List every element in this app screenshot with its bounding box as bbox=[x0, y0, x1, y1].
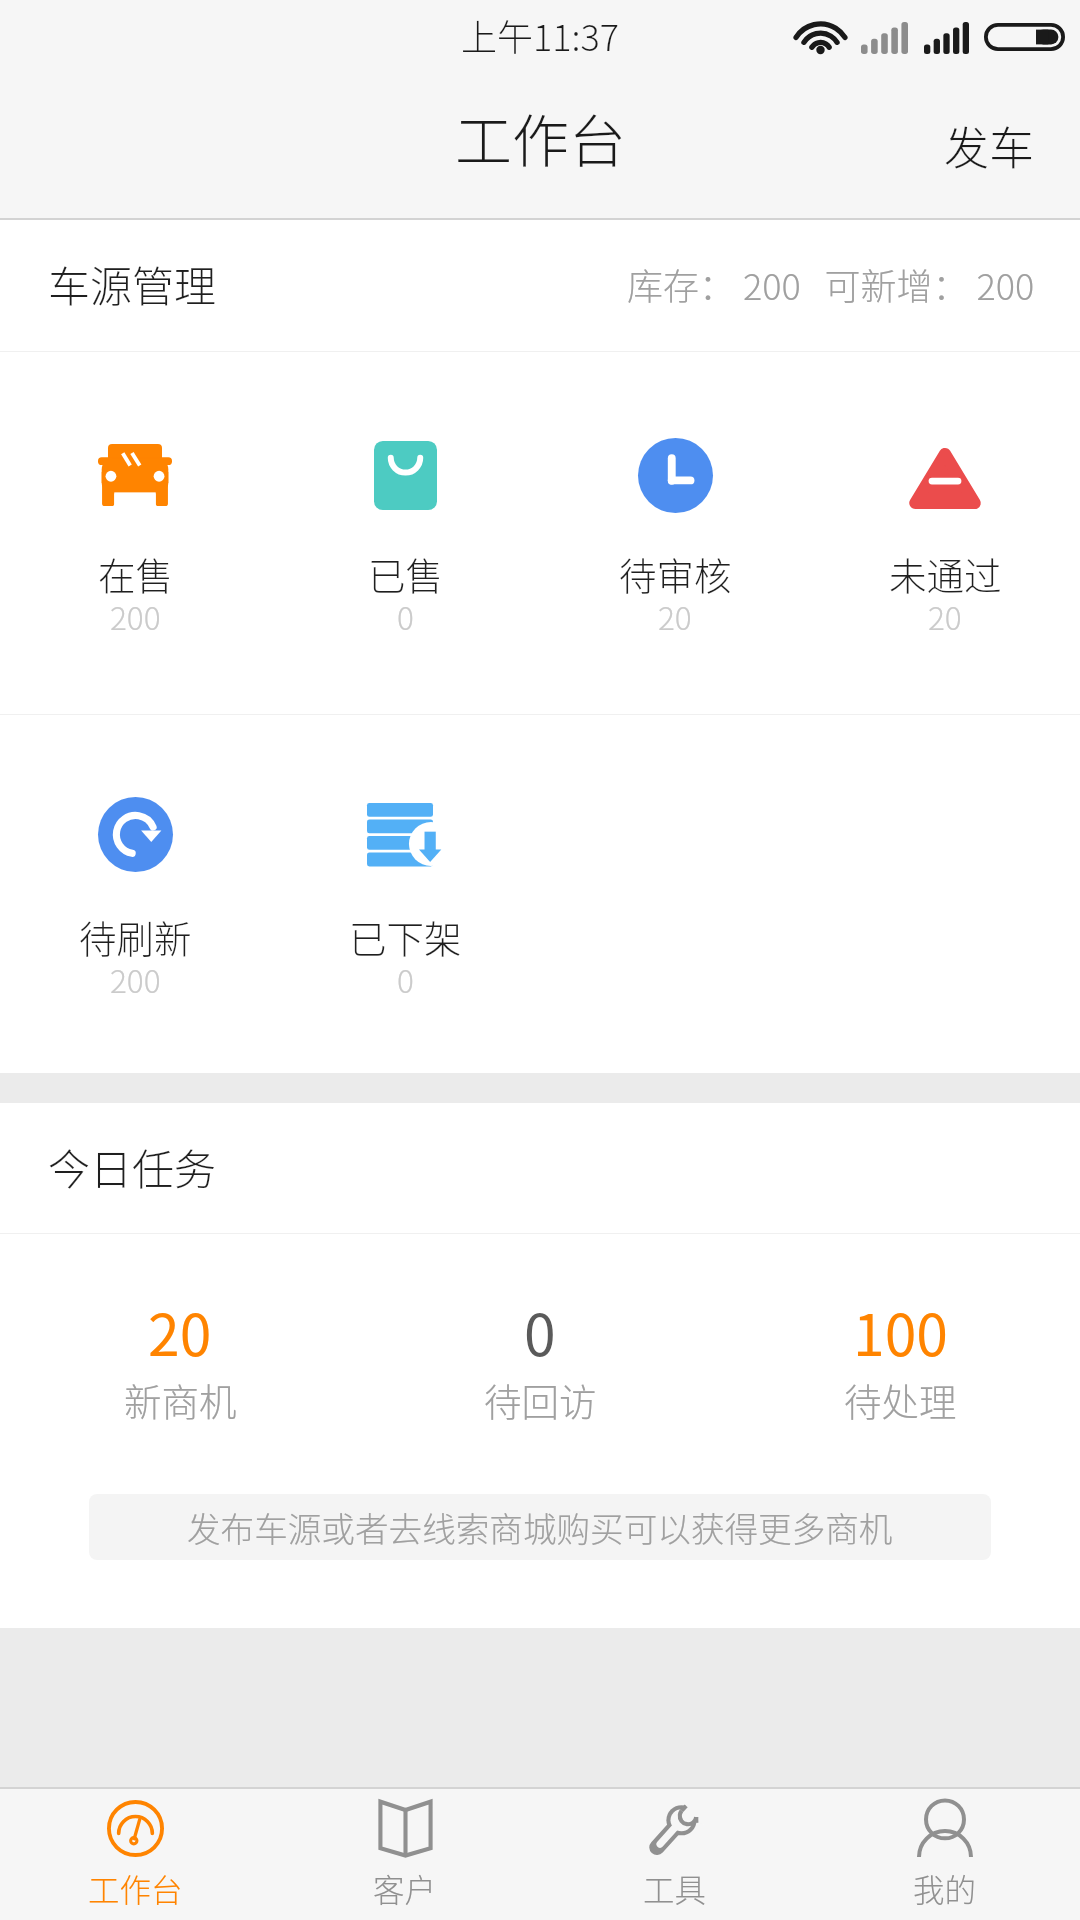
staticText: 已售 bbox=[368, 546, 443, 600]
staticText: 待回访 bbox=[484, 1372, 597, 1426]
staticText: 20 bbox=[148, 1290, 212, 1373]
staticText: 0 bbox=[397, 956, 414, 1002]
staticText: 我的 bbox=[913, 1865, 977, 1911]
staticText: 今日任务 bbox=[48, 1136, 217, 1197]
staticText: 20 bbox=[658, 593, 692, 639]
button[interactable]: 已下架 bbox=[270, 715, 540, 1073]
other: 工作台 bbox=[107, 1800, 164, 1857]
other: 我的 bbox=[919, 1800, 971, 1857]
staticText: 待审核 bbox=[619, 546, 732, 600]
staticText: 库存： 200 可新增： 200 bbox=[627, 258, 1035, 310]
button[interactable]: 100 bbox=[720, 1234, 1080, 1628]
staticText: 工作台 bbox=[455, 96, 626, 179]
staticText: 客户 bbox=[373, 1865, 437, 1911]
button[interactable]: 发布车源或者去线索商城购买可以获得更多商机 bbox=[89, 1494, 991, 1560]
staticText: 0 bbox=[524, 1290, 556, 1373]
button[interactable]: 未通过 bbox=[810, 352, 1080, 714]
staticText: 发布车源或者去线索商城购买可以获得更多商机 bbox=[187, 1503, 893, 1552]
staticText: 上午11:37 bbox=[461, 9, 620, 61]
staticText: 工具 bbox=[643, 1865, 707, 1911]
staticText: 在售 bbox=[98, 546, 173, 600]
button[interactable]: 0 bbox=[360, 1234, 720, 1628]
button[interactable]: 20 bbox=[0, 1234, 360, 1628]
button[interactable]: 我的 bbox=[810, 1789, 1080, 1920]
staticText: 200 bbox=[110, 593, 161, 639]
staticText: 车源管理 bbox=[48, 253, 217, 314]
button[interactable]: 待刷新 bbox=[0, 715, 270, 1073]
button[interactable]: 已售 bbox=[270, 352, 540, 714]
staticText: 发车 bbox=[944, 113, 1035, 178]
staticText: 100 bbox=[853, 1290, 948, 1373]
button[interactable]: 工具 bbox=[540, 1789, 810, 1920]
button[interactable]: 客户 bbox=[270, 1789, 540, 1920]
staticText: 待刷新 bbox=[79, 909, 192, 963]
staticText: 待处理 bbox=[844, 1372, 957, 1426]
other: 客户 bbox=[377, 1800, 434, 1857]
staticText: 工作台 bbox=[88, 1865, 183, 1911]
button[interactable]: 待审核 bbox=[540, 352, 810, 714]
staticText: 新商机 bbox=[124, 1372, 237, 1426]
staticText: 0 bbox=[397, 593, 414, 639]
button[interactable]: 工作台 bbox=[0, 1789, 270, 1920]
other: 工具 bbox=[647, 1800, 704, 1857]
staticText: 200 bbox=[110, 956, 161, 1002]
staticText: 20 bbox=[928, 593, 962, 639]
button[interactable]: 在售 bbox=[0, 352, 270, 714]
staticText: 未通过 bbox=[889, 546, 1002, 600]
staticText: 已下架 bbox=[349, 909, 462, 963]
button[interactable]: 发车 bbox=[899, 72, 1080, 208]
